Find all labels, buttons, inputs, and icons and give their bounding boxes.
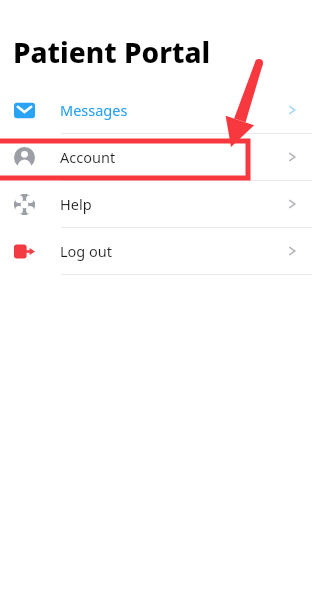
button[interactable]: Log out	[0, 228, 312, 274]
other: Log out	[14, 241, 35, 262]
other: Messages	[14, 100, 35, 121]
other: Open	[285, 244, 299, 258]
other: Help	[14, 194, 35, 215]
button[interactable]: Account	[0, 134, 312, 180]
button[interactable]: Messages	[0, 87, 312, 133]
other: Account	[14, 147, 35, 168]
other: Open	[285, 150, 299, 164]
other: Open	[285, 103, 299, 117]
staticText: Messages	[60, 100, 128, 120]
button[interactable]: Help	[0, 181, 312, 227]
staticText: Log out	[60, 241, 113, 261]
staticText: Account	[60, 147, 116, 167]
staticText: Help	[60, 194, 92, 214]
staticText: Patient Portal	[13, 33, 211, 71]
other: Open	[285, 197, 299, 211]
